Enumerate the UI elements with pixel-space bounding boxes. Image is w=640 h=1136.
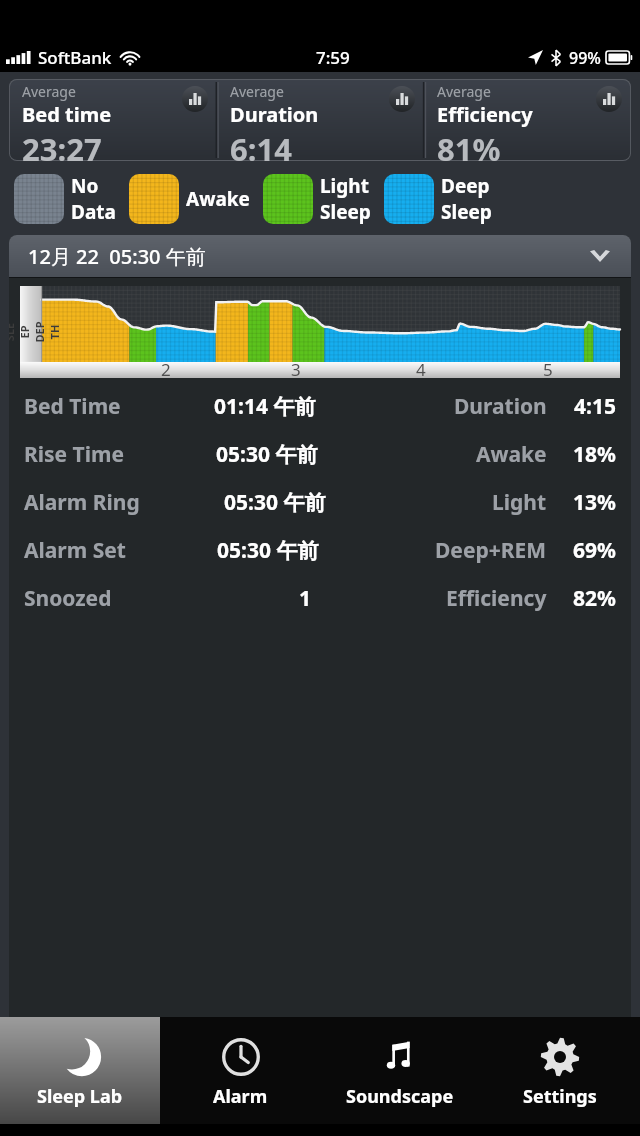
staticText: 05:30 午前	[217, 536, 319, 565]
staticText: Light	[492, 488, 547, 517]
button[interactable]: Efficiency chart	[596, 86, 622, 112]
staticText: 05:30 午前	[224, 488, 326, 517]
staticText: 13%	[573, 488, 616, 517]
staticText: 4:15	[574, 392, 616, 421]
staticText: Average	[230, 82, 284, 101]
button[interactable]: 12月 22 05:30 午前	[9, 235, 631, 277]
staticText: 5	[543, 358, 553, 381]
button[interactable]: Awake	[129, 174, 250, 224]
staticText: Efficiency	[446, 584, 547, 613]
staticText: Alarm	[213, 1084, 268, 1109]
staticText: 2	[161, 358, 171, 381]
staticText: Awake	[186, 186, 250, 212]
button[interactable]: Settings	[480, 1017, 640, 1124]
staticText: Rise Time	[24, 440, 125, 469]
staticText: Average	[22, 82, 76, 101]
staticText: Duration	[230, 101, 319, 128]
staticText: 81%	[437, 128, 501, 161]
staticText: Data	[71, 199, 116, 225]
staticText: Duration	[454, 392, 547, 421]
button[interactable]: Soundscape	[320, 1017, 480, 1124]
staticText: 18%	[573, 440, 616, 469]
staticText: Deep	[441, 173, 490, 199]
staticText: Alarm Ring	[24, 488, 140, 517]
button[interactable]: Sleep Lab	[0, 1017, 160, 1124]
staticText: 69%	[573, 536, 616, 565]
button[interactable]: Collapse	[586, 242, 614, 270]
button[interactable]: Average	[424, 79, 631, 161]
button[interactable]: Deep	[384, 173, 492, 225]
staticText: Sleep	[320, 199, 371, 225]
staticText: Soundscape	[346, 1084, 454, 1109]
staticText: Deep+REM	[435, 536, 547, 565]
staticText: Efficiency	[437, 101, 533, 128]
staticText: Sleep Lab	[37, 1084, 123, 1109]
staticText: 12月 22 05:30 午前	[28, 243, 206, 270]
staticText: 05:30 午前	[216, 440, 318, 469]
button[interactable]: Bed time chart	[182, 86, 208, 112]
button[interactable]: No	[14, 173, 116, 225]
staticText: 01:14 午前	[214, 392, 316, 421]
staticText: SoftBank	[38, 46, 112, 69]
staticText: 82%	[573, 584, 616, 613]
staticText: 4	[416, 358, 426, 381]
button[interactable]: Average	[9, 79, 217, 161]
staticText: 3	[291, 358, 301, 381]
staticText: Settings	[523, 1084, 597, 1109]
staticText: Bed time	[22, 101, 112, 128]
staticText: No	[71, 173, 99, 199]
staticText: Average	[437, 82, 491, 101]
button[interactable]: Duration chart	[389, 86, 415, 112]
staticText: Sleep	[441, 199, 492, 225]
staticText: 1	[299, 584, 312, 613]
button[interactable]: Alarm	[160, 1017, 320, 1124]
staticText: 99%	[569, 47, 601, 69]
staticText: Bed Time	[24, 392, 121, 421]
staticText: Light	[320, 173, 369, 199]
staticText: Snoozed	[24, 584, 112, 613]
button[interactable]: Average	[217, 79, 424, 161]
staticText: Alarm Set	[24, 536, 126, 565]
button[interactable]: Light	[263, 173, 371, 225]
staticText: 23:27	[22, 128, 102, 161]
staticText: Awake	[476, 440, 547, 469]
staticText: SLEEP DEPTH	[9, 320, 61, 343]
staticText: 6:14	[230, 128, 292, 161]
staticText: 7:59	[316, 46, 350, 69]
